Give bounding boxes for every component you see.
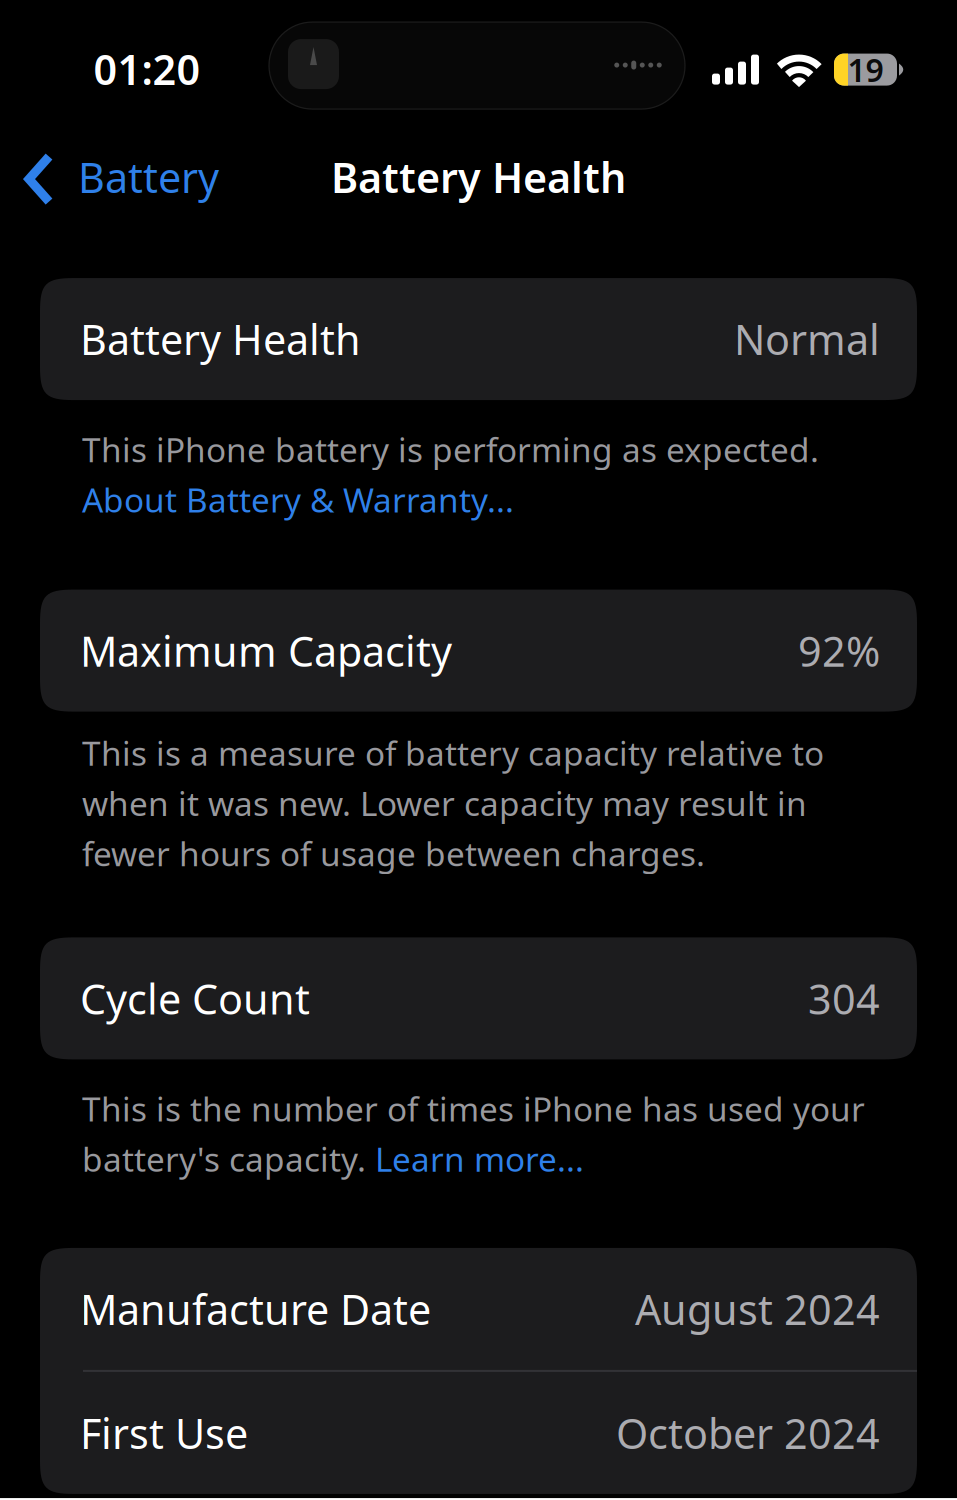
button[interactable]: Battery [0, 130, 235, 216]
staticText: Cycle Count [80, 971, 310, 1026]
staticText: fewer hours of usage between charges. [82, 831, 705, 875]
staticText: Normal [734, 312, 880, 366]
staticText: About Battery & Warranty... [82, 477, 514, 522]
staticText: battery's capacity. [82, 1137, 375, 1181]
staticText: Manufacture Date [80, 1281, 431, 1336]
staticText: Learn more... [375, 1137, 584, 1181]
button[interactable]: Cycle Count [40, 937, 917, 1059]
button[interactable]: Learn more... [375, 1137, 584, 1181]
button[interactable]: Manufacture Date [40, 1248, 917, 1370]
staticText: Battery Health [80, 312, 361, 366]
staticText: 19 [847, 48, 883, 91]
staticText: October 2024 [616, 1405, 880, 1460]
staticText: First Use [80, 1405, 248, 1460]
staticText: 304 [808, 971, 880, 1026]
button[interactable]: First Use [40, 1372, 917, 1494]
staticText: This iPhone battery is performing as exp… [82, 427, 819, 471]
staticText: 01:20 [93, 42, 200, 96]
staticText: Battery [78, 150, 219, 204]
staticText: August 2024 [635, 1281, 880, 1336]
staticText: Maximum Capacity [80, 623, 452, 678]
staticText: This is the number of times iPhone has u… [82, 1086, 865, 1131]
staticText: when it was new. Lower capacity may resu… [82, 781, 807, 825]
staticText: Battery Health [331, 150, 626, 204]
button[interactable]: About Battery & Warranty... [82, 477, 875, 522]
button[interactable]: Battery Health [40, 278, 917, 400]
staticText: 92% [798, 623, 880, 678]
staticText: This is a measure of battery capacity re… [82, 731, 824, 775]
button[interactable]: Maximum Capacity [40, 590, 917, 712]
